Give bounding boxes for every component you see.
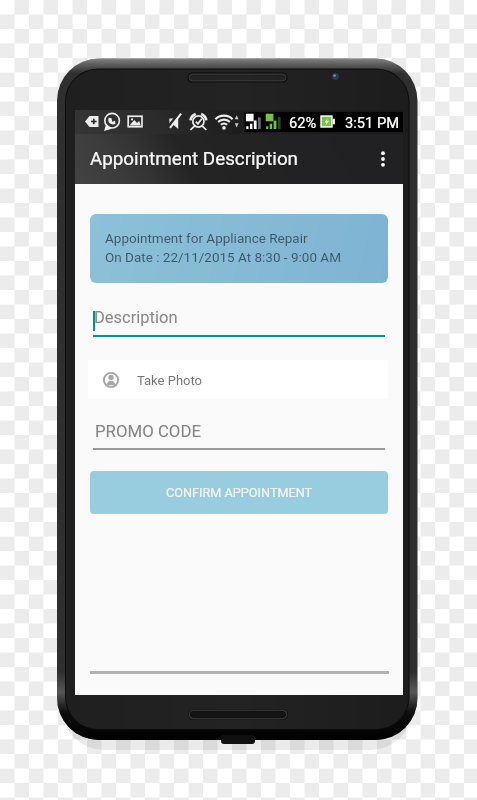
button[interactable]: CONFIRM APPOINTMENT — [90, 471, 388, 514]
button[interactable]: Description — [93, 306, 385, 337]
staticText: CONFIRM APPOINTMENT — [166, 485, 313, 500]
button[interactable]: Take Photo — [88, 360, 388, 399]
staticText: On Date : 22/11/2015 At 8:30 - 9:00 AM — [105, 249, 341, 265]
button[interactable]: More options — [363, 134, 403, 184]
staticText: Description — [94, 308, 178, 327]
staticText: 62% — [289, 114, 317, 131]
staticText: PROMO CODE — [95, 421, 201, 441]
staticText: 3:51 PM — [345, 114, 400, 131]
staticText: Take Photo — [137, 373, 203, 388]
staticText: Appointment Description — [90, 148, 298, 170]
button[interactable]: Appointment for Appliance Repair — [90, 214, 388, 283]
button[interactable]: PROMO CODE — [93, 418, 385, 450]
staticText: Appointment for Appliance Repair — [105, 230, 308, 246]
